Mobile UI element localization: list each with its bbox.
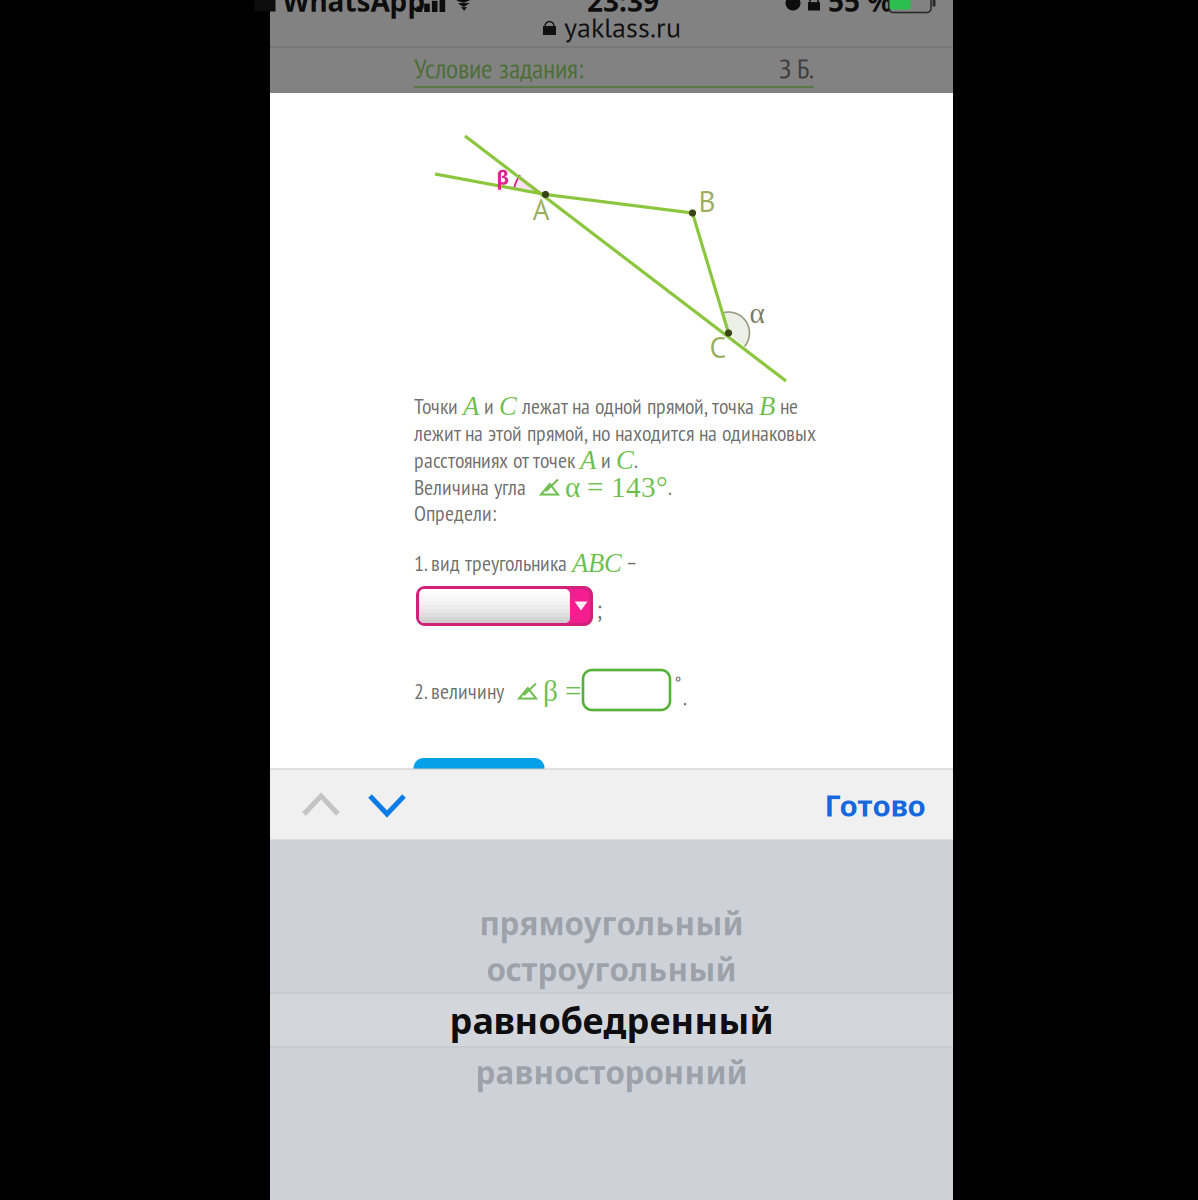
staticText: α	[749, 297, 764, 329]
staticText: C	[499, 391, 517, 421]
staticText: yaklass.ru	[564, 9, 681, 45]
staticText: β =	[536, 675, 589, 707]
staticText: расстояниях от точек	[414, 446, 580, 474]
staticText: Определи:	[414, 499, 497, 527]
staticText: равнобедренный	[449, 995, 773, 1044]
staticText: и	[479, 392, 499, 420]
button[interactable]: Triangle type	[416, 586, 593, 626]
staticText: и	[596, 446, 616, 474]
button[interactable]: Submit	[413, 758, 544, 804]
staticText: C	[616, 445, 634, 475]
staticText: .	[668, 473, 672, 501]
staticText: −	[622, 549, 636, 577]
staticText: B	[759, 391, 775, 421]
staticText: A	[463, 391, 479, 421]
staticText: α = 143°	[558, 471, 668, 503]
staticText: .	[683, 682, 687, 712]
staticText: A	[532, 190, 549, 228]
staticText: лежит на этой прямой, но находится на од…	[414, 419, 816, 447]
staticText: Точки	[414, 392, 463, 420]
staticText: 55 %	[828, 0, 892, 20]
staticText: C	[709, 328, 726, 366]
staticText: Готово	[824, 785, 925, 825]
staticText: 1. вид треугольника	[414, 549, 572, 577]
staticText: .	[634, 446, 638, 474]
button[interactable]: Next field	[355, 779, 419, 831]
staticText: B	[698, 182, 715, 220]
staticText: ;	[596, 593, 601, 625]
staticText: °	[674, 670, 681, 696]
staticText: не	[775, 392, 798, 420]
staticText: β	[496, 163, 509, 191]
button[interactable]: Answer field	[583, 670, 670, 710]
staticText: прямоугольный	[479, 902, 743, 944]
button[interactable]: Previous field	[289, 779, 353, 831]
staticText: равносторонний	[475, 1051, 747, 1093]
staticText: WhatsApp	[282, 0, 425, 20]
button[interactable]: Готово	[814, 775, 935, 835]
staticText: A	[580, 445, 596, 475]
staticText: 2. величину	[414, 677, 519, 705]
staticText: З Б.	[779, 50, 814, 86]
staticText: 23:39	[587, 0, 659, 20]
staticText: Величина угла	[414, 473, 541, 501]
staticText: остроугольный	[486, 948, 736, 990]
staticText: Условие задания:	[414, 50, 584, 86]
staticText: лежат на одной прямой, точка	[517, 392, 759, 420]
button[interactable]: Back to WhatsApp	[254, 0, 425, 20]
staticText: ABC	[572, 548, 622, 578]
